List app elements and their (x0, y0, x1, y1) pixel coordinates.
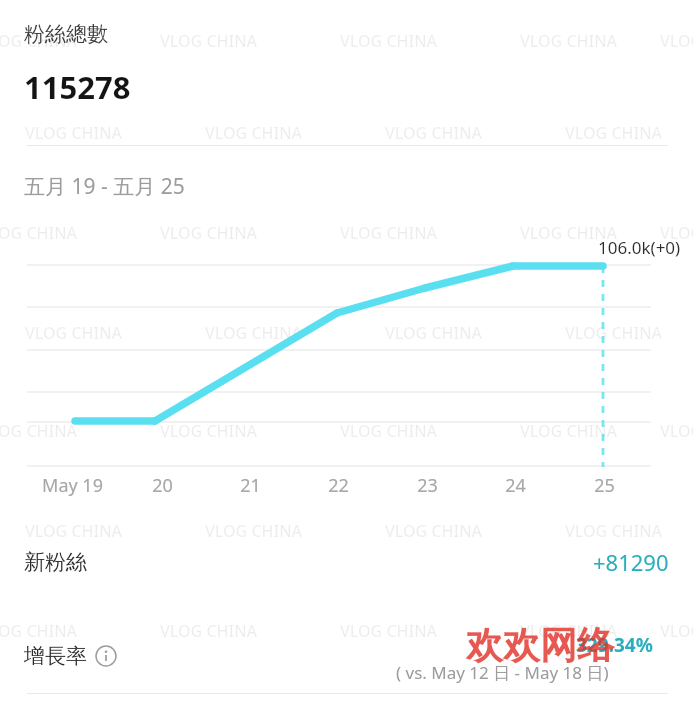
staticText: 329.34% (576, 632, 653, 658)
staticText: 20 (152, 473, 173, 498)
staticText: VLOG CHINA (660, 620, 693, 642)
staticText: 21 (240, 473, 261, 498)
staticText: ( vs. May 12 日 - May 18 日) (396, 661, 609, 684)
button[interactable]: 新粉絲 (0, 533, 693, 591)
staticText: VLOG CHINA (660, 420, 693, 442)
staticText: VLOG CHINA (0, 30, 78, 52)
staticText: VLOG CHINA (25, 122, 123, 144)
staticText: 22 (328, 473, 349, 498)
staticText: VLOG CHINA (520, 420, 618, 442)
staticText: 106.0k(+0) (598, 236, 681, 259)
staticText: VLOG CHINA (160, 620, 258, 642)
staticText: VLOG CHINA (205, 122, 303, 144)
staticText: VLOG CHINA (0, 222, 78, 244)
staticText: VLOG CHINA (160, 222, 258, 244)
staticText: VLOG CHINA (25, 322, 123, 344)
staticText: VLOG CHINA (565, 520, 663, 542)
staticText: VLOG CHINA (340, 620, 438, 642)
staticText: VLOG CHINA (205, 322, 303, 344)
staticText: VLOG CHINA (160, 420, 258, 442)
staticText: VLOG CHINA (205, 520, 303, 542)
staticText: 增長率 (24, 643, 87, 669)
staticText: 欢欢网络 (466, 622, 614, 669)
staticText: VLOG CHINA (340, 30, 438, 52)
staticText: VLOG CHINA (660, 222, 693, 244)
staticText: VLOG CHINA (520, 30, 618, 52)
staticText: VLOG CHINA (565, 322, 663, 344)
staticText: 25 (594, 473, 615, 498)
staticText: VLOG CHINA (385, 520, 483, 542)
staticText: VLOG CHINA (520, 222, 618, 244)
staticText: 五月 19 - 五月 25 (24, 172, 185, 201)
staticText: VLOG CHINA (520, 620, 618, 642)
staticText: 24 (505, 473, 526, 498)
staticText: VLOG CHINA (25, 520, 123, 542)
staticText: 115278 (24, 66, 131, 108)
staticText: VLOG CHINA (565, 122, 663, 144)
staticText: 粉絲總數 (24, 21, 108, 47)
staticText: May 19 (42, 473, 103, 498)
staticText: VLOG CHINA (0, 420, 78, 442)
staticText: VLOG CHINA (340, 222, 438, 244)
staticText: VLOG CHINA (385, 322, 483, 344)
staticText: +81290 (593, 547, 669, 577)
staticText: VLOG CHINA (340, 420, 438, 442)
staticText: VLOG CHINA (160, 30, 258, 52)
staticText: 新粉絲 (24, 549, 87, 575)
staticText: VLOG CHINA (0, 620, 78, 642)
staticText: 23 (417, 473, 438, 498)
staticText: VLOG CHINA (660, 30, 693, 52)
button[interactable]: 增長率 (0, 616, 693, 693)
button[interactable]: Info about growth rate (95, 645, 117, 667)
staticText: VLOG CHINA (385, 122, 483, 144)
